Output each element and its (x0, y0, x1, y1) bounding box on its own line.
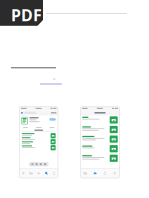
staticText: PDF (11, 4, 42, 26)
